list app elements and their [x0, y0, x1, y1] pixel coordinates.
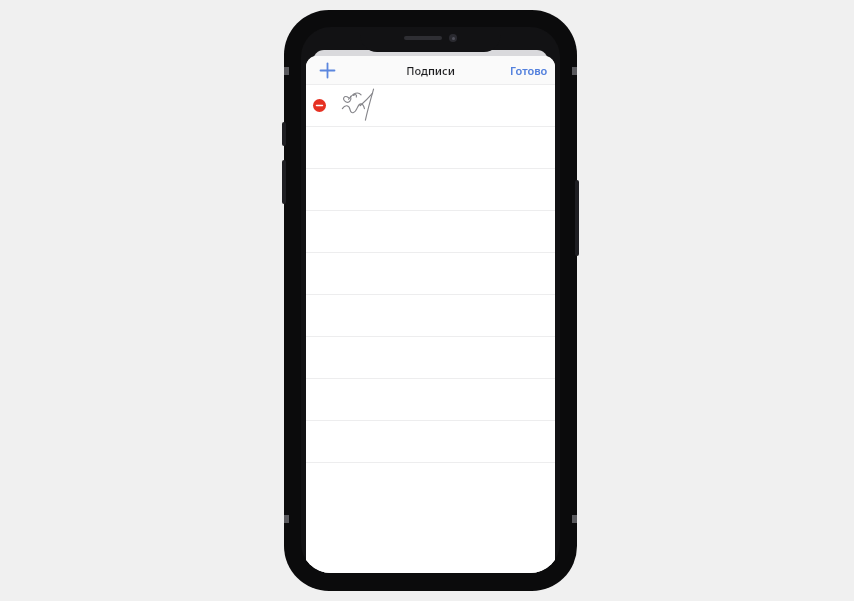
button[interactable]: Add signature	[314, 57, 340, 83]
staticText: Подписи	[406, 63, 455, 78]
button[interactable]: Delete signature	[306, 85, 555, 126]
button[interactable]: Готово	[510, 63, 548, 78]
staticText: Готово	[510, 63, 548, 78]
button[interactable]: Delete signature	[313, 99, 326, 112]
